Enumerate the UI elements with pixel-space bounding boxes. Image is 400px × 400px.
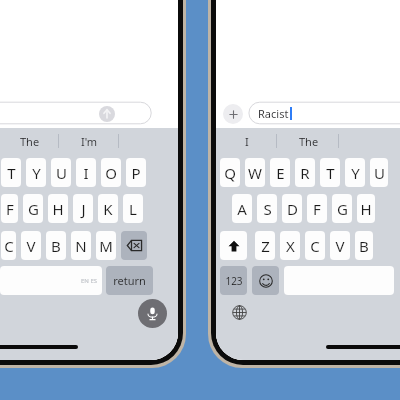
staticText: B xyxy=(359,236,369,256)
button[interactable]: Racist xyxy=(250,103,400,124)
staticText: I'm xyxy=(81,134,98,149)
button[interactable]: Shift xyxy=(220,231,247,260)
button[interactable]: B xyxy=(355,231,373,260)
staticText: G xyxy=(337,199,348,219)
staticText: U xyxy=(56,163,67,183)
button[interactable]: M xyxy=(96,231,116,260)
button[interactable]: N xyxy=(71,231,91,260)
staticText: C xyxy=(310,236,320,256)
button[interactable]: R xyxy=(295,158,315,187)
button[interactable]: Send xyxy=(0,103,118,124)
staticText: T xyxy=(326,163,335,183)
button[interactable]: Q xyxy=(220,158,240,187)
staticText: J xyxy=(81,199,86,219)
button[interactable]: F xyxy=(307,194,327,223)
staticText: T xyxy=(7,163,16,183)
button[interactable]: K xyxy=(98,194,118,223)
staticText: F xyxy=(313,199,321,219)
staticText: The xyxy=(20,134,40,149)
button[interactable]: S xyxy=(257,194,277,223)
button[interactable]: EN ES xyxy=(0,266,102,295)
staticText: I xyxy=(83,163,89,183)
staticText: V xyxy=(335,236,345,256)
button[interactable]: G xyxy=(332,194,352,223)
button[interactable]: I'm xyxy=(60,128,119,155)
button[interactable]: 123 xyxy=(220,266,247,295)
staticText: G xyxy=(28,199,39,219)
button[interactable]: W xyxy=(245,158,265,187)
button[interactable]: A xyxy=(232,194,252,223)
staticText: I xyxy=(245,134,249,149)
staticText: Y xyxy=(351,163,360,183)
button[interactable]: Y xyxy=(26,158,46,187)
staticText: X xyxy=(286,236,295,256)
button[interactable]: U xyxy=(370,158,388,187)
staticText: U xyxy=(374,163,385,183)
button[interactable]: X xyxy=(280,231,300,260)
staticText: P xyxy=(131,163,141,183)
staticText: 123 xyxy=(225,274,243,288)
staticText: Z xyxy=(261,236,270,256)
button[interactable]: B xyxy=(46,231,66,260)
button[interactable]: Send xyxy=(99,106,115,122)
button[interactable]: P xyxy=(126,158,146,187)
staticText: D xyxy=(287,199,298,219)
staticText: A xyxy=(237,199,247,219)
button[interactable]: I xyxy=(76,158,96,187)
button[interactable]: H xyxy=(48,194,68,223)
button[interactable]: U xyxy=(51,158,71,187)
staticText: R xyxy=(300,163,310,183)
button[interactable]: C xyxy=(1,231,16,260)
button[interactable]: I xyxy=(216,128,278,155)
staticText: V xyxy=(26,236,36,256)
button[interactable]: Z xyxy=(255,231,275,260)
button[interactable]: L xyxy=(123,194,143,223)
button[interactable]: Emoji xyxy=(252,266,279,295)
button[interactable]: Backspace xyxy=(121,231,147,260)
staticText: F xyxy=(6,199,14,219)
staticText: N xyxy=(75,236,87,256)
staticText: S xyxy=(263,199,272,219)
button[interactable]: Add attachment xyxy=(223,104,243,124)
staticText: H xyxy=(52,199,64,219)
staticText: K xyxy=(103,199,113,219)
button[interactable]: Switch keyboard xyxy=(226,299,252,325)
staticText: E xyxy=(276,163,285,183)
staticText: L xyxy=(129,199,137,219)
staticText: H xyxy=(360,199,372,219)
button[interactable]: The xyxy=(278,128,339,155)
button[interactable]: C xyxy=(305,231,325,260)
button[interactable]: The xyxy=(0,128,60,155)
staticText: M xyxy=(99,236,113,256)
button[interactable]: V xyxy=(330,231,350,260)
button[interactable]: D xyxy=(282,194,302,223)
staticText: Q xyxy=(224,163,236,183)
staticText: The xyxy=(299,134,319,149)
staticText: return xyxy=(113,273,146,288)
button[interactable]: Dictate xyxy=(138,299,167,328)
button[interactable]: E xyxy=(270,158,290,187)
staticText: O xyxy=(105,163,117,183)
staticText: W xyxy=(248,163,262,183)
button[interactable]: H xyxy=(357,194,375,223)
staticText: B xyxy=(51,236,61,256)
staticText: Y xyxy=(32,163,41,183)
button[interactable]: J xyxy=(73,194,93,223)
button[interactable]: V xyxy=(21,231,41,260)
button[interactable]: return xyxy=(106,266,153,295)
button[interactable]: O xyxy=(101,158,121,187)
staticText: Racist xyxy=(258,106,289,121)
button[interactable]: T xyxy=(320,158,340,187)
button[interactable]: G xyxy=(23,194,43,223)
button[interactable]: F xyxy=(1,194,18,223)
button[interactable]: Y xyxy=(345,158,365,187)
button[interactable]: T xyxy=(1,158,21,187)
staticText: C xyxy=(4,236,14,256)
staticText: EN ES xyxy=(81,277,98,285)
